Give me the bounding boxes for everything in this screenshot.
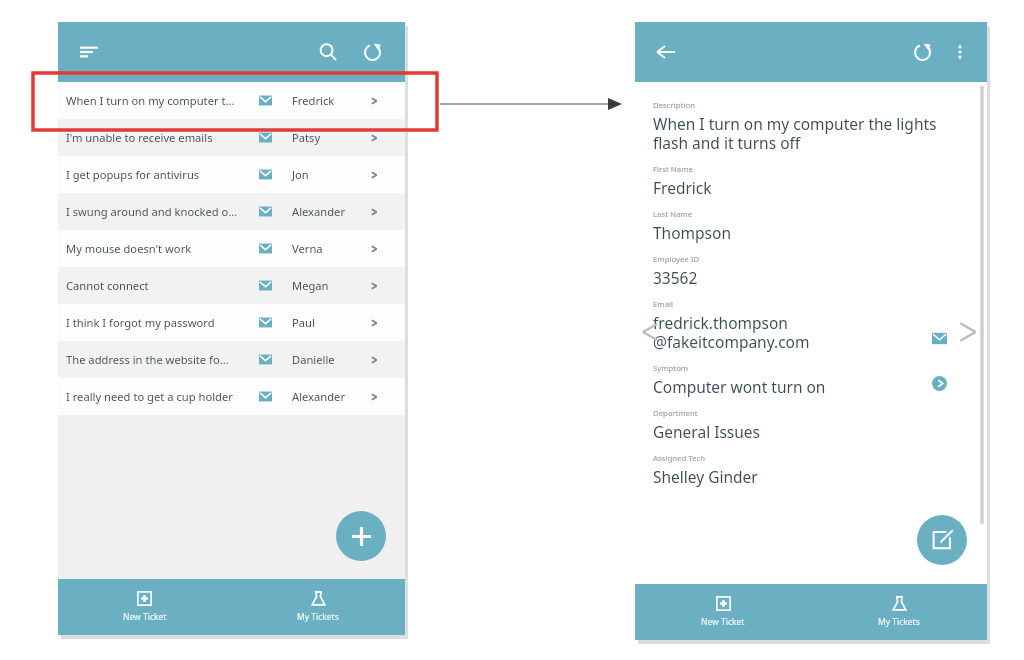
staticText: First Name bbox=[653, 164, 693, 175]
button[interactable]: New Ticket bbox=[58, 579, 231, 635]
staticText: Last Name bbox=[653, 209, 693, 220]
staticText: Fredrick bbox=[653, 177, 712, 198]
button[interactable]: Refresh bbox=[905, 35, 939, 69]
staticText: My mouse doesn't work bbox=[66, 241, 259, 256]
staticText: Description bbox=[653, 100, 695, 111]
staticText: I think I forgot my password bbox=[66, 315, 259, 330]
staticText: Employee ID bbox=[653, 254, 700, 265]
staticText: Verna bbox=[292, 241, 370, 256]
button[interactable]: My mouse doesn't work bbox=[58, 230, 405, 267]
staticText: Shelley Ginder bbox=[653, 466, 758, 487]
button[interactable]: My Tickets bbox=[231, 579, 405, 635]
staticText: New Ticket bbox=[701, 616, 745, 628]
staticText: I really need to get a cup holder bbox=[66, 389, 259, 404]
button[interactable]: I swung around and knocked o... bbox=[58, 193, 405, 230]
staticText: I'm unable to receive emails bbox=[66, 130, 259, 145]
button[interactable]: I'm unable to receive emails bbox=[58, 119, 405, 156]
button[interactable]: When I turn on my computer t... bbox=[58, 82, 405, 119]
button[interactable]: Edit ticket bbox=[917, 515, 967, 565]
staticText: Thompson bbox=[653, 222, 731, 243]
staticText: Paul bbox=[292, 315, 370, 330]
button[interactable]: I really need to get a cup holder bbox=[58, 378, 405, 415]
button[interactable]: I get popups for antivirus bbox=[58, 156, 405, 193]
staticText: Alexander bbox=[292, 389, 370, 404]
staticText: My Tickets bbox=[297, 611, 339, 623]
button[interactable]: Email bbox=[927, 326, 951, 350]
button[interactable]: Refresh bbox=[355, 35, 389, 69]
staticText: Email bbox=[653, 299, 674, 310]
staticText: Alexander bbox=[292, 204, 370, 219]
staticText: General Issues bbox=[653, 421, 761, 442]
staticText: Megan bbox=[292, 278, 370, 293]
staticText: I get popups for antivirus bbox=[66, 167, 259, 182]
staticText: Department bbox=[653, 408, 698, 419]
staticText: Danielle bbox=[292, 352, 370, 367]
button[interactable]: I think I forgot my password bbox=[58, 304, 405, 341]
staticText: Assigned Tech bbox=[653, 453, 706, 464]
staticText: The address in the website fo... bbox=[66, 352, 259, 367]
button[interactable]: Back bbox=[649, 35, 683, 69]
button[interactable]: Sort bbox=[72, 35, 106, 69]
button[interactable]: New Ticket bbox=[635, 584, 811, 640]
staticText: 33562 bbox=[653, 267, 698, 288]
staticText: Jon bbox=[292, 167, 370, 182]
staticText: When I turn on my computer the lights fl… bbox=[653, 113, 937, 153]
button[interactable]: More options bbox=[945, 37, 975, 67]
staticText: Fredrick bbox=[292, 93, 370, 108]
button[interactable]: Cannot connect bbox=[58, 267, 405, 304]
staticText: Cannot connect bbox=[66, 278, 259, 293]
button[interactable]: Add ticket bbox=[336, 511, 386, 561]
button[interactable]: Search bbox=[311, 35, 345, 69]
staticText: When I turn on my computer t... bbox=[66, 93, 259, 108]
staticText: New Ticket bbox=[123, 611, 167, 623]
button[interactable]: Symptom bbox=[927, 371, 951, 395]
staticText: I swung around and knocked o... bbox=[66, 204, 259, 219]
staticText: Symptom bbox=[653, 363, 689, 374]
staticText: fredrick.thompson @fakeitcompany.com bbox=[653, 312, 810, 352]
button[interactable]: The address in the website fo... bbox=[58, 341, 405, 378]
staticText: Patsy bbox=[292, 130, 370, 145]
button[interactable]: My Tickets bbox=[811, 584, 987, 640]
staticText: Computer wont turn on bbox=[653, 376, 826, 397]
staticText: My Tickets bbox=[878, 616, 920, 628]
